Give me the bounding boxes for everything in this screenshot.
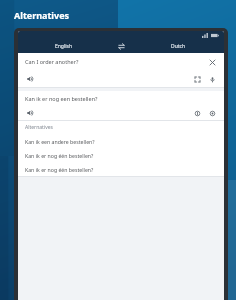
button[interactable]: Kan ik er nog één bestellen? <box>18 162 224 176</box>
staticText: English <box>55 43 73 50</box>
button[interactable]: Dutch <box>132 39 224 53</box>
button[interactable]: Copy <box>192 108 202 118</box>
button[interactable]: Share <box>207 108 217 118</box>
button[interactable]: English <box>18 39 110 53</box>
staticText: Can I order another? <box>25 58 207 65</box>
staticText: Kan ik een andere bestellen? <box>25 138 95 145</box>
staticText: Kan ik er nog één bestellen? <box>25 152 94 159</box>
button[interactable]: Clear <box>207 57 217 67</box>
button[interactable]: Kan ik een andere bestellen? <box>18 134 224 148</box>
button[interactable]: Swap languages <box>110 39 132 53</box>
staticText: Dutch <box>171 43 186 50</box>
staticText: Alternatives <box>25 124 53 131</box>
button[interactable]: Play audio <box>25 74 35 84</box>
button[interactable]: Play audio <box>25 108 35 118</box>
staticText: Alternatives <box>14 9 70 21</box>
button[interactable]: Microphone <box>207 74 217 84</box>
staticText: Kan ik er nog één bestellen? <box>25 166 94 173</box>
button[interactable]: Kan ik er nog één bestellen? <box>18 148 224 162</box>
button[interactable]: Fullscreen <box>192 74 202 84</box>
staticText: Kan ik er nog een bestellen? <box>25 95 98 102</box>
